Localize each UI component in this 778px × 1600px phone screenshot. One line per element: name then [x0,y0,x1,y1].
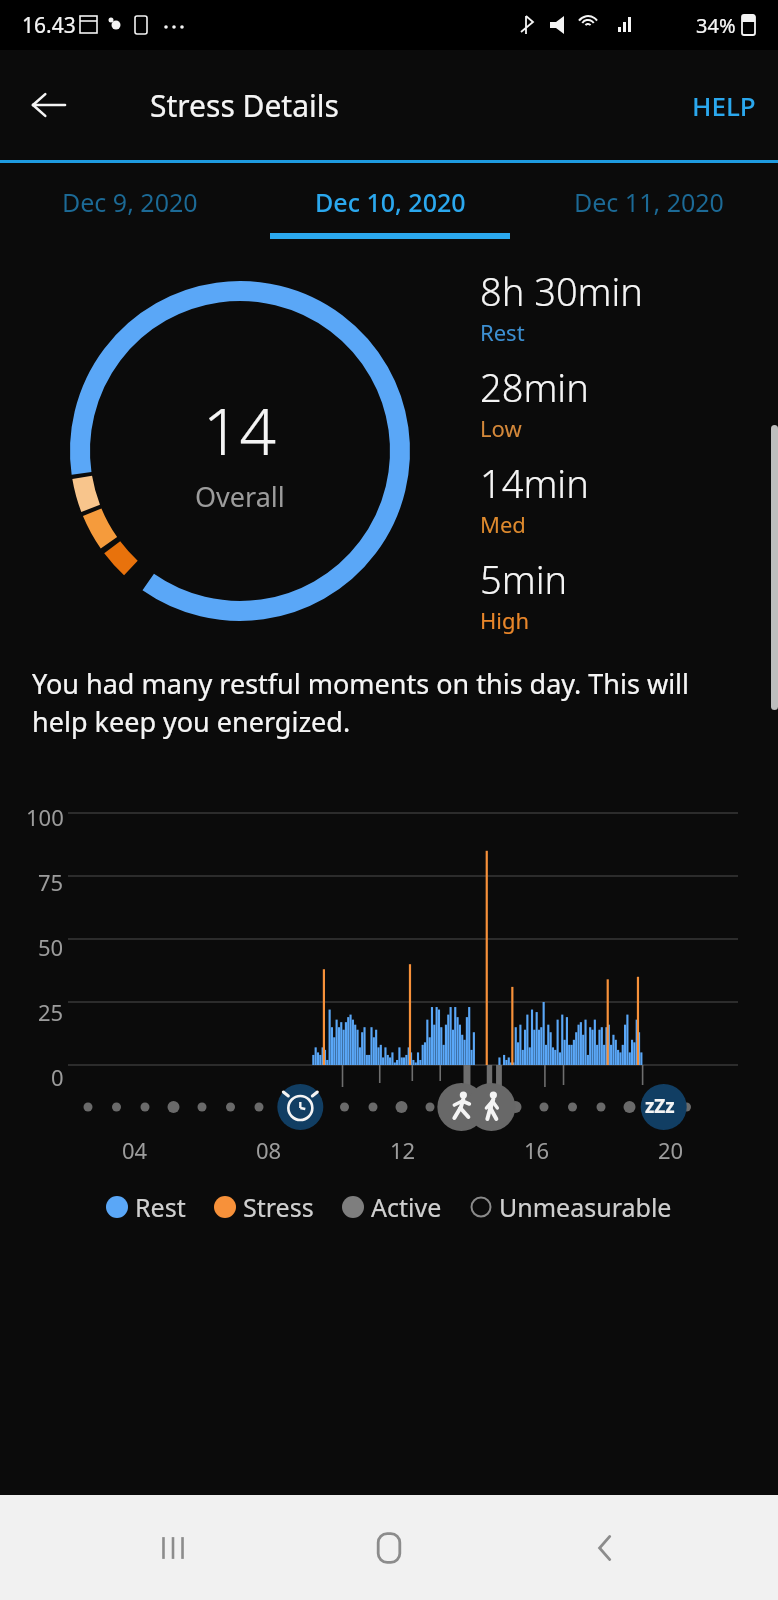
staticText: High [480,605,530,635]
staticText: Stress Details [150,85,339,126]
staticText: 12 [390,1135,416,1165]
staticText: zZz [645,1093,675,1119]
staticText: Active [371,1190,442,1224]
button[interactable]: Active [342,1190,442,1224]
button[interactable]: Dec 11, 2020 [519,163,778,251]
staticText: 5min [480,553,568,605]
staticText: Unmeasurable [499,1190,672,1224]
button[interactable]: HELP [670,72,778,139]
staticText: Med [480,509,526,539]
staticText: 50 [38,932,64,962]
button[interactable]: Dec 10, 2020 [260,163,519,251]
button[interactable]: Home [346,1505,432,1591]
staticText: Low [480,413,522,443]
staticText: 8h 30min [480,265,643,317]
button[interactable]: Stress [214,1190,314,1224]
staticText: 34% [696,12,736,39]
staticText: HELP [692,88,756,123]
staticText: 14min [480,457,589,509]
button[interactable]: Recents [130,1505,216,1591]
button[interactable]: Rest [106,1190,186,1224]
staticText: Dec 10, 2020 [315,185,466,219]
button[interactable]: Unmeasurable [470,1190,672,1224]
staticText: Stress [243,1190,314,1224]
staticText: 100 [26,802,64,832]
staticText: 75 [38,867,64,897]
staticText: Rest [480,317,525,347]
staticText: 08 [256,1135,282,1165]
staticText: 14 [203,387,277,474]
staticText: Overall [195,478,285,515]
staticText: 04 [122,1135,148,1165]
button[interactable]: Back [562,1505,648,1591]
staticText: 28min [480,361,589,413]
staticText: 20 [658,1135,684,1165]
button[interactable]: Dec 9, 2020 [0,163,260,251]
staticText: You had many restful moments on this day… [32,665,718,740]
button[interactable]: Back [18,75,78,135]
staticText: Dec 9, 2020 [62,185,198,219]
staticText: 16.43 [22,11,76,40]
staticText: Dec 11, 2020 [574,185,724,219]
staticText: 25 [38,997,64,1027]
staticText: 16 [524,1135,550,1165]
staticText: Rest [135,1190,186,1224]
staticText: 0 [51,1062,64,1092]
